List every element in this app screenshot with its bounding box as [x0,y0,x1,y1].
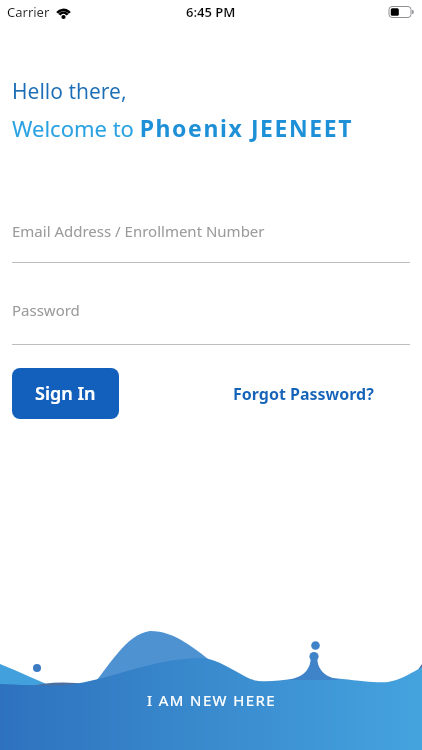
staticText: Carrier [7,3,50,21]
staticText: Sign In [35,381,96,406]
staticText: 6:45 PM [186,3,236,21]
staticText: I AM NEW HERE [147,690,276,710]
staticText: Forgot Password? [233,383,374,405]
button[interactable]: I AM NEW HERE [131,686,292,714]
staticText: Email Address / Enrollment Number [12,221,265,241]
button[interactable]: Forgot Password? [225,375,382,413]
button[interactable]: Email Address / Enrollment Number [12,221,410,263]
staticText: Hello there, [12,77,127,106]
staticText: Welcome to Phoenix JEENEET [12,112,354,143]
button[interactable]: Sign In [12,368,119,419]
button[interactable]: Password [12,300,410,345]
staticText: Password [12,300,80,320]
